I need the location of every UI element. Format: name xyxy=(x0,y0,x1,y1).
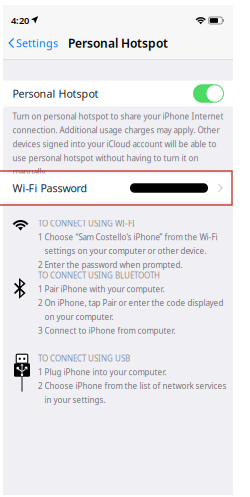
button[interactable]: Wi-Fi Password xyxy=(3,173,233,202)
staticText: Personal Hotspot xyxy=(68,35,168,51)
staticText: devices signed into your iCloud account … xyxy=(12,139,216,149)
staticText: 4:20 xyxy=(11,14,29,27)
staticText: Choose iPhone from the list of network s… xyxy=(44,381,226,391)
staticText: Connect to iPhone from computer. xyxy=(44,325,175,336)
staticText: Pair iPhone with your computer. xyxy=(44,284,164,294)
staticText: Choose “Sam Costello’s iPhone” from the … xyxy=(44,232,217,242)
staticText: settings on your computer or other devic… xyxy=(44,246,206,256)
staticText: Settings xyxy=(16,36,58,50)
staticText: on your computer. xyxy=(44,311,113,322)
staticText: TO CONNECT USING BLUETOOTH xyxy=(38,270,160,281)
staticText: 2 xyxy=(38,259,43,270)
staticText: TO CONNECT USING WI-FI xyxy=(38,218,135,229)
staticText: connection. Additional usage charges may… xyxy=(12,125,219,135)
staticText: Personal Hotspot xyxy=(12,86,98,101)
staticText: 1 xyxy=(38,284,43,294)
staticText: Turn on personal hotspot to share your i… xyxy=(12,111,223,122)
button[interactable]: Settings xyxy=(5,31,64,55)
staticText: 1 xyxy=(38,367,43,377)
staticText: 2 xyxy=(38,381,43,391)
staticText: Enter the password when prompted. xyxy=(44,259,182,270)
staticText: manually. xyxy=(12,167,47,177)
staticText: in your settings. xyxy=(44,394,105,405)
staticText: TO CONNECT USING USB xyxy=(38,353,130,364)
staticText: Wi-Fi Password xyxy=(12,181,87,195)
staticText: use personal hotspot without having to t… xyxy=(12,153,198,163)
staticText: 1 xyxy=(38,232,43,242)
staticText: 3 xyxy=(38,325,43,336)
staticText: 2 xyxy=(38,298,43,308)
staticText: On iPhone, tap Pair or enter the code di… xyxy=(44,298,223,308)
button[interactable]: Personal Hotspot xyxy=(3,80,233,106)
staticText: Plug iPhone into your computer. xyxy=(44,367,166,377)
